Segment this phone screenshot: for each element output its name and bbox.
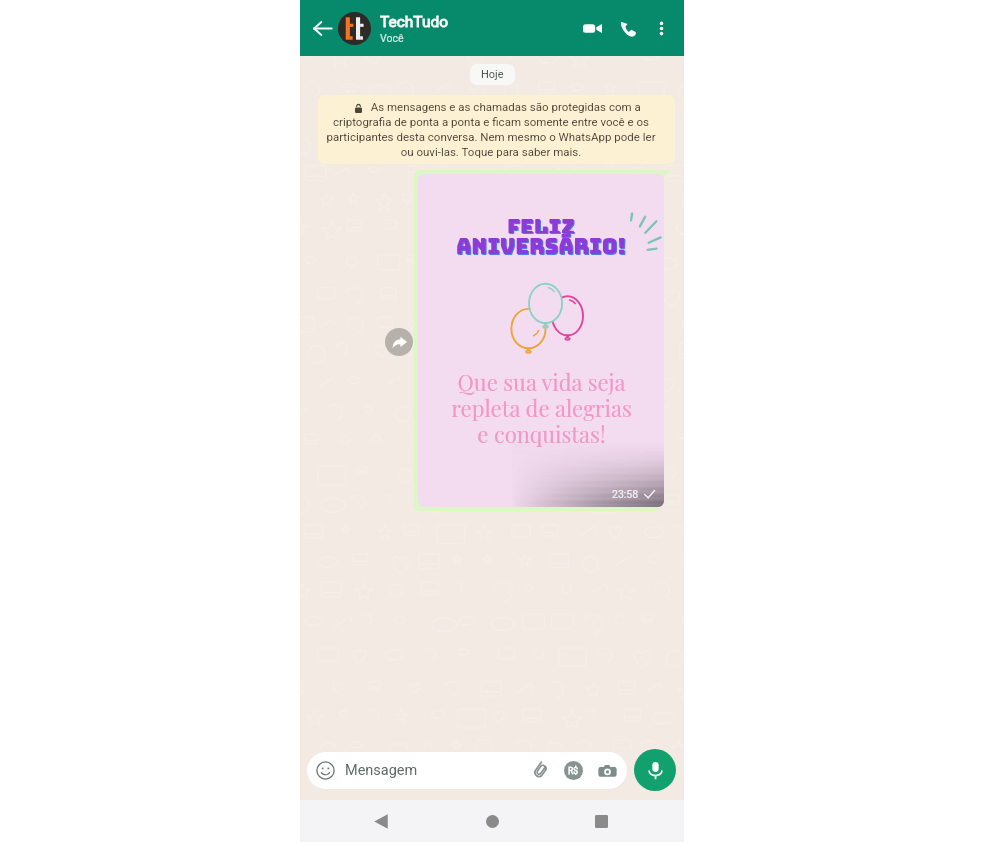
button[interactable]: Attach xyxy=(529,760,551,782)
staticText: Hoje xyxy=(481,68,504,81)
staticText: Você xyxy=(380,32,404,44)
button[interactable]: Record voice message xyxy=(634,749,676,791)
staticText: Que sua vida seja repleta de alegrias e … xyxy=(451,367,632,449)
staticText: ANIVERSÁRIO! xyxy=(457,234,628,256)
button[interactable]: As mensagens e as chamadas são protegida… xyxy=(318,95,675,164)
staticText: 23:58 xyxy=(612,488,639,500)
button[interactable]: Home xyxy=(470,800,514,842)
button[interactable]: Back xyxy=(359,800,403,842)
button[interactable]: Call xyxy=(610,10,646,46)
button[interactable]: Mensagem xyxy=(307,752,627,789)
button[interactable]: Hoje xyxy=(470,64,515,85)
button[interactable]: Forward xyxy=(385,328,413,356)
button[interactable]: Back xyxy=(307,13,337,43)
button[interactable]: More options xyxy=(646,13,676,43)
staticText: R$ xyxy=(568,766,579,776)
staticText: ANIVERSÁRIO! xyxy=(456,233,627,255)
staticText: TechTudo xyxy=(380,13,449,31)
staticText: Mensagem xyxy=(345,762,418,779)
button[interactable]: Recents xyxy=(579,800,623,842)
staticText: As mensagens e as chamadas são protegida… xyxy=(326,100,656,159)
staticText: FELIZ xyxy=(507,214,575,233)
staticText: FELIZ xyxy=(508,215,576,234)
button[interactable]: Video call xyxy=(574,10,610,46)
button[interactable]: Camera xyxy=(596,760,618,782)
button[interactable]: Payment xyxy=(564,761,583,780)
